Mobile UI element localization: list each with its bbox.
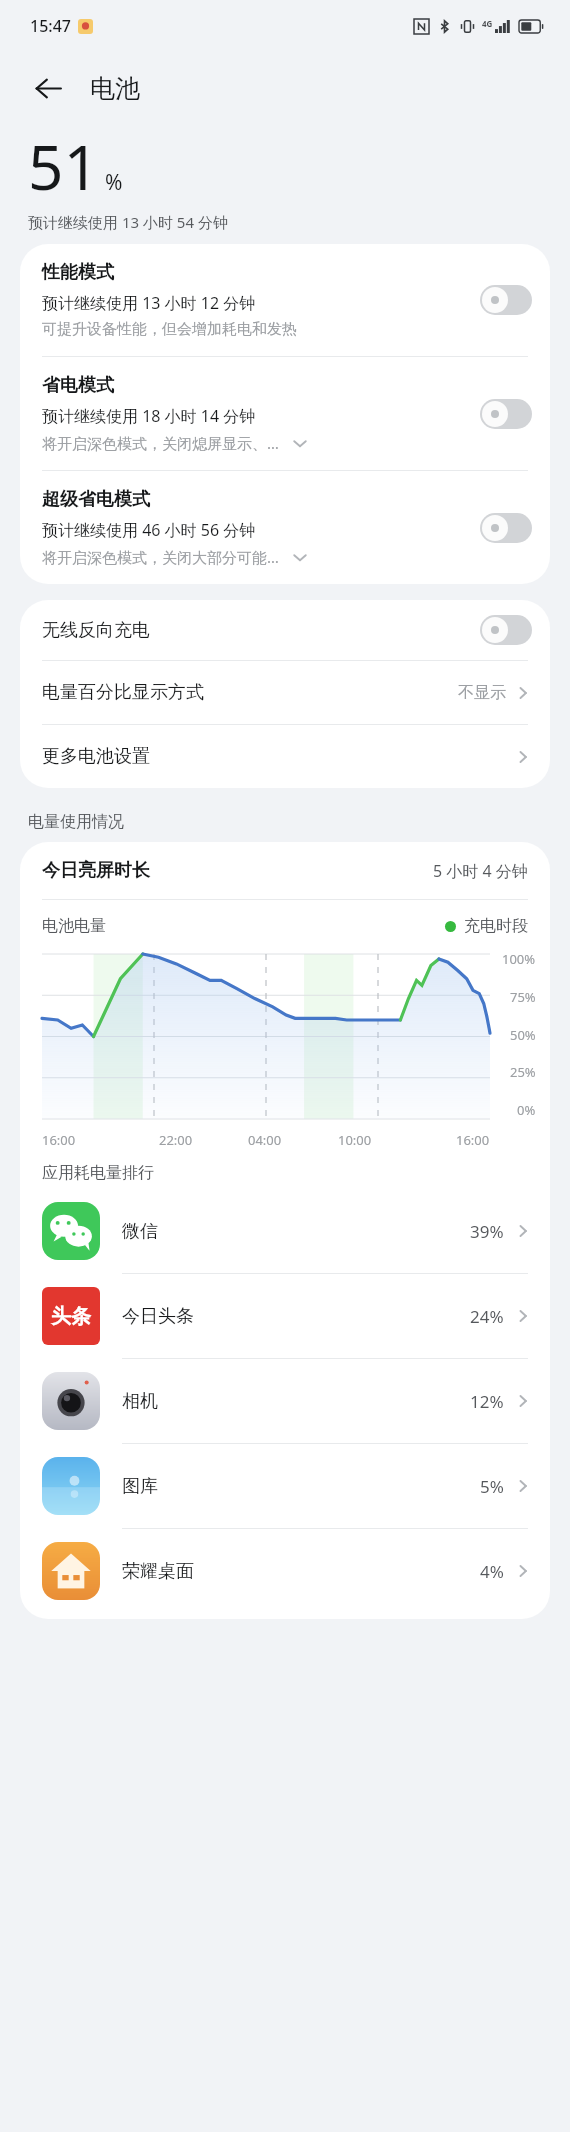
staticText: 5 小时 4 分钟 — [433, 860, 528, 882]
staticText: 预计继续使用 13 小时 12 分钟 — [42, 292, 256, 314]
button[interactable]: 电量百分比显示方式 — [20, 661, 550, 724]
staticText: 39% — [470, 1220, 504, 1243]
staticText: 电量使用情况 — [28, 812, 124, 832]
button[interactable]: 荣耀桌面 — [20, 1529, 550, 1613]
staticText: 应用耗电量排行 — [42, 1163, 154, 1183]
staticText: 相机 — [122, 1390, 470, 1413]
staticText: 将开启深色模式，关闭大部分可能… — [42, 547, 279, 567]
staticText: 4G — [482, 18, 493, 29]
staticText: 22:00 — [159, 1131, 193, 1149]
staticText: 微信 — [122, 1220, 470, 1243]
staticText: 0% — [517, 1101, 536, 1119]
button[interactable]: Toggle — [480, 285, 532, 315]
staticText: 04:00 — [248, 1131, 282, 1149]
staticText: 4% — [480, 1560, 504, 1583]
staticText: 10:00 — [338, 1131, 372, 1149]
button[interactable]: 图库 — [20, 1444, 550, 1528]
button[interactable]: 超级省电模式 — [20, 471, 550, 584]
staticText: 不显示 — [458, 683, 506, 703]
staticText: 电池电量 — [42, 916, 445, 936]
staticText: 荣耀桌面 — [122, 1560, 480, 1583]
button[interactable]: 微信 — [20, 1189, 550, 1273]
staticText: 图库 — [122, 1475, 480, 1498]
staticText: 无线反向充电 — [42, 619, 480, 642]
staticText: 51 — [28, 124, 99, 208]
button[interactable]: 相机 — [20, 1359, 550, 1443]
staticText: 100% — [502, 950, 536, 968]
staticText: 性能模式 — [42, 261, 114, 284]
staticText: 16:00 — [456, 1131, 490, 1149]
button[interactable]: 无线反向充电 — [20, 600, 550, 660]
button[interactable]: 更多电池设置 — [20, 725, 550, 788]
staticText: 75% — [510, 988, 536, 1006]
staticText: 24% — [470, 1305, 504, 1328]
staticText: % — [105, 168, 123, 197]
staticText: 充电时段 — [464, 916, 528, 936]
staticText: 12% — [470, 1390, 504, 1413]
button[interactable]: 今日亮屏时长 — [20, 842, 550, 899]
button[interactable]: 性能模式 — [20, 244, 550, 356]
staticText: 25% — [510, 1063, 536, 1081]
staticText: 可提升设备性能，但会增加耗电和发热 — [42, 320, 297, 339]
button[interactable]: 省电模式 — [20, 357, 550, 470]
staticText: 预计继续使用 13 小时 54 分钟 — [28, 212, 228, 232]
staticText: 5% — [480, 1475, 504, 1498]
staticText: 超级省电模式 — [42, 488, 150, 511]
staticText: 今日头条 — [122, 1305, 470, 1328]
button[interactable]: Toggle — [480, 615, 532, 645]
button[interactable]: 头条 — [20, 1274, 550, 1358]
button[interactable]: Toggle — [480, 399, 532, 429]
staticText: 电量百分比显示方式 — [42, 681, 458, 704]
button[interactable]: Back — [24, 64, 72, 112]
staticText: 15:47 — [30, 15, 71, 37]
staticText: 省电模式 — [42, 374, 114, 397]
staticText: 16:00 — [42, 1131, 76, 1149]
staticText: 将开启深色模式，关闭熄屏显示、… — [42, 433, 279, 453]
staticText: 更多电池设置 — [42, 745, 514, 768]
staticText: 预计继续使用 46 小时 56 分钟 — [42, 519, 256, 541]
staticText: 预计继续使用 18 小时 14 分钟 — [42, 405, 256, 427]
staticText: 今日亮屏时长 — [42, 859, 433, 882]
button[interactable]: Toggle — [480, 513, 532, 543]
staticText: 头条 — [51, 1304, 91, 1329]
staticText: 电池 — [90, 73, 140, 104]
staticText: 50% — [510, 1026, 536, 1044]
